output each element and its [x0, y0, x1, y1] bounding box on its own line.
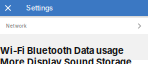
- staticText: Wi-Fi Bluetooth Data usage More Display …: [0, 45, 132, 64]
- button[interactable]: Close: [0, 0, 16, 16]
- button[interactable]: Network: [0, 18, 148, 34]
- staticText: Settings: [26, 4, 53, 12]
- staticText: Network: [6, 23, 27, 29]
